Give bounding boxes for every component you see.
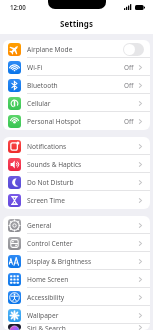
button[interactable]: Home Screen	[3, 270, 150, 288]
staticText: General	[27, 221, 52, 230]
staticText: Do Not Disturb	[27, 178, 74, 187]
staticText: Sounds & Haptics	[27, 160, 82, 169]
button[interactable]: Siri & Search	[3, 324, 150, 330]
button[interactable]: Screen Time	[3, 191, 150, 209]
button[interactable]: Do Not Disturb	[3, 173, 150, 191]
button[interactable]: Cellular	[3, 94, 150, 112]
staticText: Cellular	[27, 99, 51, 108]
staticText: Personal Hotspot	[27, 117, 81, 126]
button[interactable]: Accessibility	[3, 288, 150, 306]
staticText: Control Center	[27, 239, 73, 248]
staticText: Home Screen	[27, 275, 69, 284]
staticText: Wi-Fi	[27, 63, 43, 72]
button[interactable]: Airplane Mode toggle	[123, 43, 144, 56]
button[interactable]: Airplane Mode	[3, 40, 150, 58]
button[interactable]: Wallpaper	[3, 306, 150, 324]
staticText: Display & Brightness	[27, 257, 92, 266]
staticText: Notifications	[27, 142, 67, 151]
button[interactable]: Notifications	[3, 137, 150, 155]
staticText: Siri & Search	[27, 324, 66, 330]
button[interactable]: General	[3, 216, 150, 234]
staticText: 12:00	[10, 3, 26, 11]
button[interactable]: Control Center	[3, 234, 150, 252]
staticText: Off	[124, 81, 134, 90]
staticText: Settings	[60, 18, 93, 29]
staticText: Screen Time	[27, 196, 65, 205]
staticText: Accessibility	[27, 293, 65, 302]
staticText: Off	[124, 63, 134, 72]
button[interactable]: Personal Hotspot	[3, 112, 150, 130]
staticText: Wallpaper	[27, 311, 59, 320]
button[interactable]: Bluetooth	[3, 76, 150, 94]
button[interactable]: Wi-Fi	[3, 58, 150, 76]
staticText: Bluetooth	[27, 81, 58, 90]
staticText: Off	[124, 117, 134, 126]
button[interactable]: Sounds & Haptics	[3, 155, 150, 173]
button[interactable]: Display & Brightness	[3, 252, 150, 270]
staticText: Airplane Mode	[27, 45, 73, 54]
